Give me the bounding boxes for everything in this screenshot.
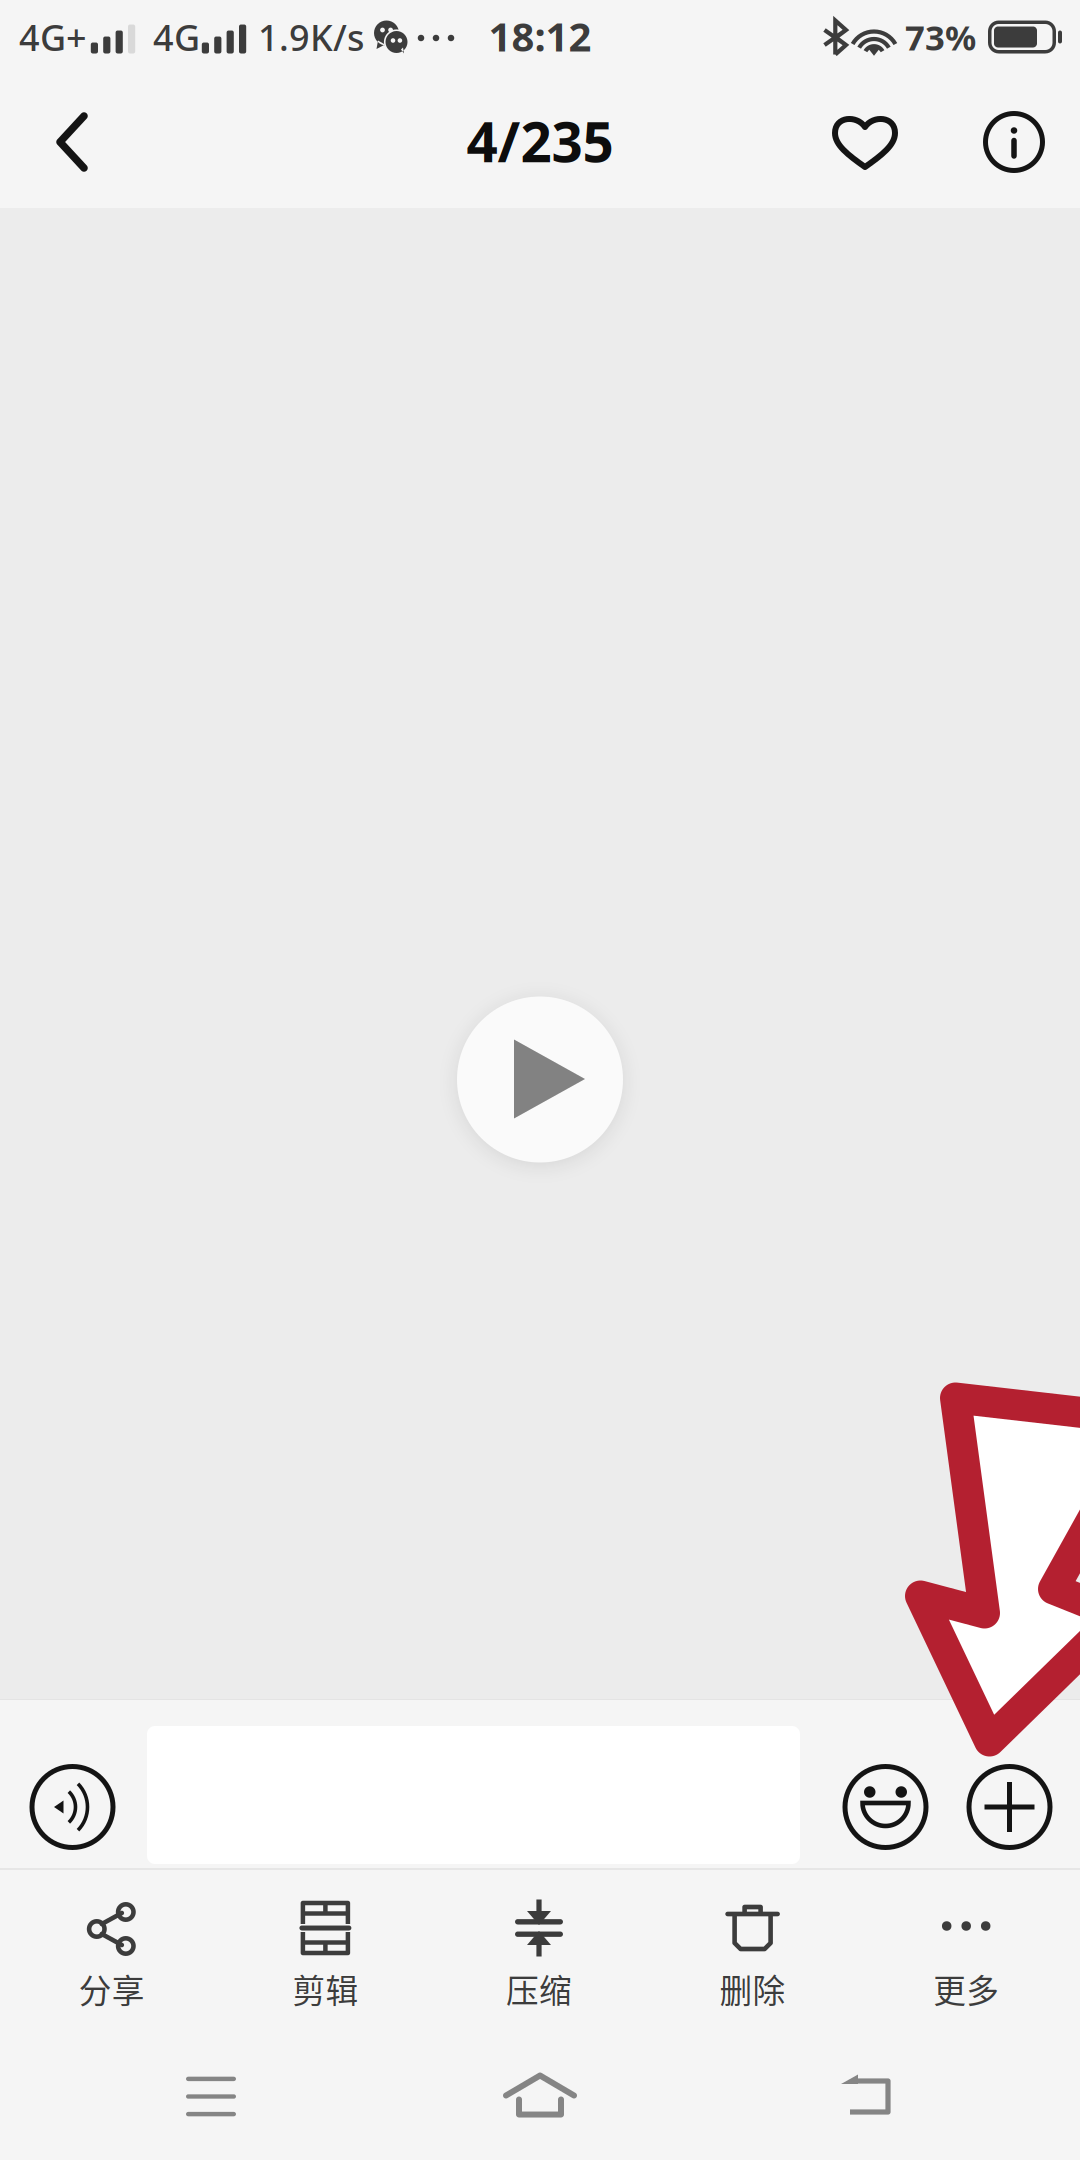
staticText: 剪辑 <box>292 1965 358 2012</box>
button[interactable]: Back <box>14 88 134 196</box>
staticText: 4G <box>153 13 200 61</box>
button[interactable]: Recent apps <box>86 2042 336 2151</box>
staticText: 分享 <box>79 1965 145 2012</box>
button[interactable]: Favorite <box>782 88 948 196</box>
button[interactable]: Home <box>415 2042 665 2151</box>
button[interactable]: More options <box>954 1723 1064 1891</box>
button[interactable]: Voice message <box>14 1723 130 1891</box>
staticText: 删除 <box>720 1965 786 2012</box>
button[interactable]: Back <box>743 2042 993 2151</box>
button[interactable]: 分享 <box>5 1870 219 2051</box>
button[interactable]: 删除 <box>646 1870 859 2051</box>
button[interactable]: 剪辑 <box>219 1870 432 2051</box>
button[interactable]: Info <box>948 88 1080 196</box>
button[interactable]: Message input field <box>130 1723 816 1891</box>
staticText: 4/235 <box>466 105 613 177</box>
staticText: 压缩 <box>506 1965 572 2012</box>
button[interactable]: 压缩 <box>432 1870 646 2051</box>
staticText: 18:12 <box>488 9 591 62</box>
staticText: 4G+ <box>19 13 87 61</box>
staticText: 1.9K/s <box>258 13 364 61</box>
button[interactable]: Emoji <box>816 1723 954 1891</box>
button[interactable]: 更多 <box>859 1870 1073 2051</box>
staticText: 73% <box>905 14 976 60</box>
button[interactable]: Play video <box>450 989 630 1169</box>
staticText: 更多 <box>933 1965 999 2012</box>
